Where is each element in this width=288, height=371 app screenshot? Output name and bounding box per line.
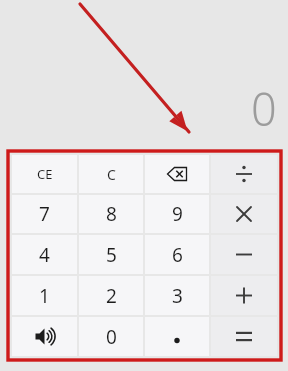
button[interactable]: 0 [79,317,143,356]
staticText: 8 [106,201,117,227]
button[interactable]: Decimal point [145,317,209,356]
button[interactable]: 4 [12,235,77,274]
button[interactable]: Add [211,276,277,315]
staticText: 7 [39,201,50,227]
button[interactable]: 8 [79,195,143,233]
button[interactable]: 5 [79,235,143,274]
button[interactable]: 2 [79,276,143,315]
button[interactable]: Speak result [12,317,77,356]
staticText: 6 [172,242,183,268]
button[interactable]: 6 [145,235,209,274]
staticText: 5 [106,242,117,268]
button[interactable]: CE [12,155,77,193]
staticText: 4 [39,242,50,268]
staticText: C [107,165,116,184]
staticText: 9 [172,201,183,227]
button[interactable]: Multiply [211,195,277,233]
staticText: 0 [106,324,117,350]
button[interactable]: 1 [12,276,77,315]
button[interactable]: 7 [12,195,77,233]
staticText: 0 [251,78,277,139]
button[interactable]: C [79,155,143,193]
button[interactable]: Equals [211,317,277,356]
staticText: 3 [172,283,183,309]
button[interactable]: Subtract [211,235,277,274]
staticText: 1 [39,283,50,309]
button[interactable]: Backspace [145,155,209,193]
staticText: 2 [106,283,117,309]
staticText: CE [37,165,53,183]
button[interactable]: 9 [145,195,209,233]
button[interactable]: Divide [211,155,277,193]
button[interactable]: 3 [145,276,209,315]
